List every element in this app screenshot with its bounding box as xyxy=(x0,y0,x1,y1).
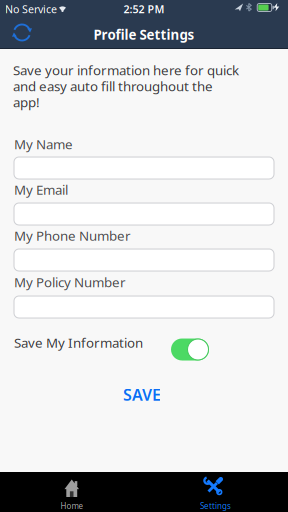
button[interactable]: My Email xyxy=(14,203,274,225)
staticText: My Phone Number xyxy=(14,227,131,244)
staticText: 2:52 PM xyxy=(123,2,164,16)
staticText: Save My Information xyxy=(14,334,143,351)
button[interactable]: Save My Information xyxy=(171,338,209,360)
button[interactable]: Sync xyxy=(12,23,31,42)
button[interactable]: SAVE xyxy=(123,384,161,405)
button[interactable]: Settings xyxy=(144,472,288,512)
button[interactable]: My Name xyxy=(14,157,274,179)
staticText: Save your information here for quick xyxy=(13,61,239,79)
staticText: My Policy Number xyxy=(14,273,126,291)
staticText: My Email xyxy=(14,181,68,198)
button[interactable]: My Policy Number xyxy=(14,296,274,318)
staticText: app! xyxy=(13,93,40,111)
button[interactable]: Home xyxy=(0,472,144,512)
staticText: Home xyxy=(60,501,83,511)
button[interactable]: My Phone Number xyxy=(14,249,274,271)
staticText: Profile Settings xyxy=(93,26,194,43)
staticText: My Name xyxy=(14,135,73,153)
staticText: and easy auto fill throughout the xyxy=(13,77,213,95)
staticText: Settings xyxy=(200,501,231,511)
staticText: No Service xyxy=(5,2,57,16)
staticText: SAVE xyxy=(123,384,161,405)
